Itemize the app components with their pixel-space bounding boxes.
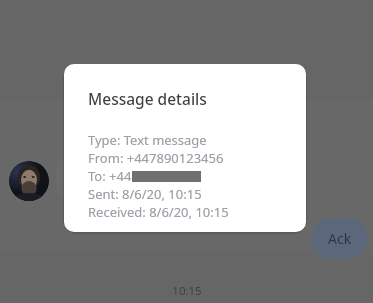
button[interactable]: Ack bbox=[311, 218, 368, 259]
button[interactable]: Contact photo bbox=[9, 161, 49, 201]
staticText: Type: Text message bbox=[88, 131, 207, 149]
staticText: 10:15 bbox=[157, 283, 217, 299]
staticText: Sent: 8/6/20, 10:15 bbox=[88, 185, 202, 203]
staticText: Received: 8/6/20, 10:15 bbox=[88, 203, 229, 221]
staticText: To: +44 bbox=[88, 167, 132, 185]
staticText: Ack bbox=[328, 229, 352, 248]
staticText: From: +447890123456 bbox=[88, 149, 224, 167]
staticText: Message details bbox=[88, 88, 207, 109]
